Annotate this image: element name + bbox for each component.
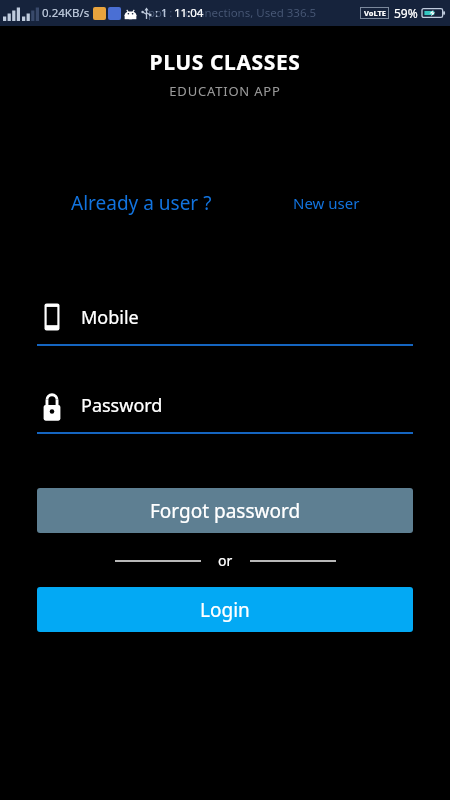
staticText: 0.24KB/s — [42, 5, 90, 21]
button[interactable]: Login — [37, 587, 413, 632]
staticText: New user — [293, 193, 360, 213]
staticText: Mobile — [81, 305, 139, 330]
staticText: EDUCATION APP — [0, 82, 450, 100]
staticText: VoLTE — [364, 8, 386, 18]
staticText: 11:04 — [174, 5, 204, 21]
button[interactable]: Password — [37, 388, 413, 422]
button[interactable]: Forgot password — [37, 488, 413, 533]
staticText: PLUS CLASSES — [0, 48, 450, 77]
button[interactable]: New user — [243, 187, 410, 219]
button[interactable]: Mobile — [37, 300, 413, 334]
staticText: pot : 1 connections, Used 336.5 — [148, 5, 317, 21]
staticText: 59% — [394, 5, 418, 21]
button[interactable]: Already a user ? — [40, 184, 243, 222]
staticText: Login — [200, 597, 250, 623]
staticText: Already a user ? — [71, 190, 212, 216]
staticText: Password — [81, 393, 163, 418]
staticText: : 1 — [155, 5, 168, 21]
staticText: or — [218, 551, 233, 570]
staticText: Forgot password — [150, 498, 301, 524]
